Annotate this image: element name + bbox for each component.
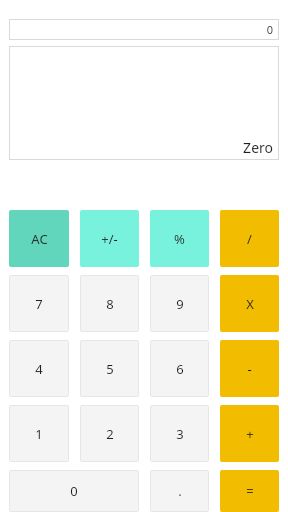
button[interactable]: . bbox=[150, 470, 209, 512]
staticText: 4 bbox=[35, 360, 43, 378]
staticText: 5 bbox=[106, 360, 114, 378]
staticText: X bbox=[246, 295, 254, 313]
staticText: - bbox=[247, 360, 252, 378]
button[interactable]: 1 bbox=[9, 405, 69, 462]
button[interactable]: 2 bbox=[80, 405, 139, 462]
staticText: 1 bbox=[35, 425, 43, 443]
staticText: 3 bbox=[176, 425, 184, 443]
staticText: 6 bbox=[176, 360, 184, 378]
button[interactable]: + bbox=[220, 405, 279, 462]
button[interactable]: 7 bbox=[9, 275, 69, 332]
staticText: Zero bbox=[243, 138, 273, 157]
button[interactable]: 8 bbox=[80, 275, 139, 332]
staticText: . bbox=[178, 482, 182, 500]
staticText: AC bbox=[31, 230, 48, 248]
button[interactable]: = bbox=[220, 470, 279, 512]
staticText: % bbox=[174, 230, 185, 248]
staticText: +/- bbox=[101, 230, 118, 248]
button[interactable]: 4 bbox=[9, 340, 69, 397]
staticText: 8 bbox=[106, 295, 114, 313]
button[interactable]: 0 bbox=[9, 470, 139, 512]
staticText: + bbox=[246, 425, 254, 443]
staticText: 9 bbox=[176, 295, 184, 313]
staticText: 0 bbox=[266, 22, 273, 37]
button[interactable]: 6 bbox=[150, 340, 209, 397]
staticText: 7 bbox=[35, 295, 43, 313]
button[interactable]: +/- bbox=[80, 210, 139, 267]
button[interactable]: X bbox=[220, 275, 279, 332]
button[interactable]: / bbox=[220, 210, 279, 267]
button[interactable]: 5 bbox=[80, 340, 139, 397]
staticText: / bbox=[247, 230, 252, 248]
staticText: = bbox=[246, 482, 254, 500]
button[interactable]: % bbox=[150, 210, 209, 267]
button[interactable]: 9 bbox=[150, 275, 209, 332]
staticText: 0 bbox=[70, 482, 78, 500]
staticText: 2 bbox=[106, 425, 114, 443]
button[interactable]: - bbox=[220, 340, 279, 397]
button[interactable]: 3 bbox=[150, 405, 209, 462]
button[interactable]: AC bbox=[9, 210, 69, 267]
